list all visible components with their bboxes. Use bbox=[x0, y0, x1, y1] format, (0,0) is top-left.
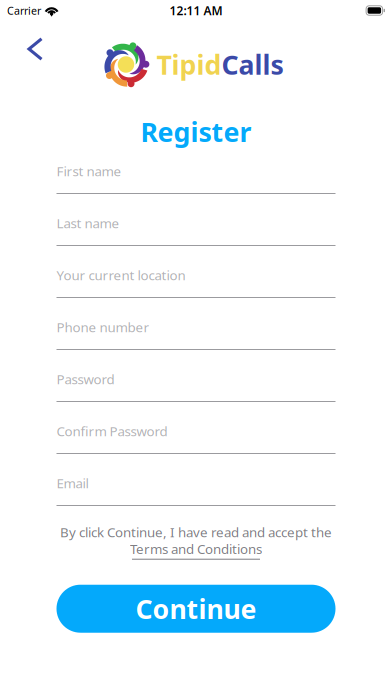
staticText: Terms and Conditions bbox=[130, 540, 262, 558]
staticText: Your current location bbox=[56, 266, 185, 284]
staticText: Continue bbox=[135, 591, 256, 626]
button[interactable]: Phone number bbox=[56, 298, 335, 350]
button[interactable]: Email bbox=[56, 454, 335, 506]
button[interactable]: Last name bbox=[56, 194, 335, 246]
button[interactable]: First name bbox=[56, 142, 335, 194]
button[interactable]: Continue bbox=[56, 585, 335, 633]
staticText: Register bbox=[140, 114, 251, 149]
button[interactable]: Terms and Conditions bbox=[130, 540, 262, 560]
staticText: Carrier bbox=[7, 3, 41, 18]
staticText: Password bbox=[56, 370, 114, 388]
button[interactable]: Back bbox=[0, 21, 59, 77]
staticText: By click Continue, I have read and accep… bbox=[60, 523, 332, 541]
staticText: Confirm Password bbox=[56, 422, 167, 440]
button[interactable]: Your current location bbox=[56, 246, 335, 298]
staticText: Calls bbox=[221, 47, 283, 82]
staticText: First name bbox=[56, 162, 121, 180]
staticText: Tipid bbox=[156, 47, 221, 82]
staticText: Email bbox=[56, 474, 88, 492]
button[interactable]: Confirm Password bbox=[56, 402, 335, 454]
button[interactable]: Password bbox=[56, 350, 335, 402]
staticText: 12:11 AM bbox=[169, 2, 222, 18]
staticText: Phone number bbox=[56, 318, 149, 336]
staticText: Last name bbox=[56, 214, 119, 232]
